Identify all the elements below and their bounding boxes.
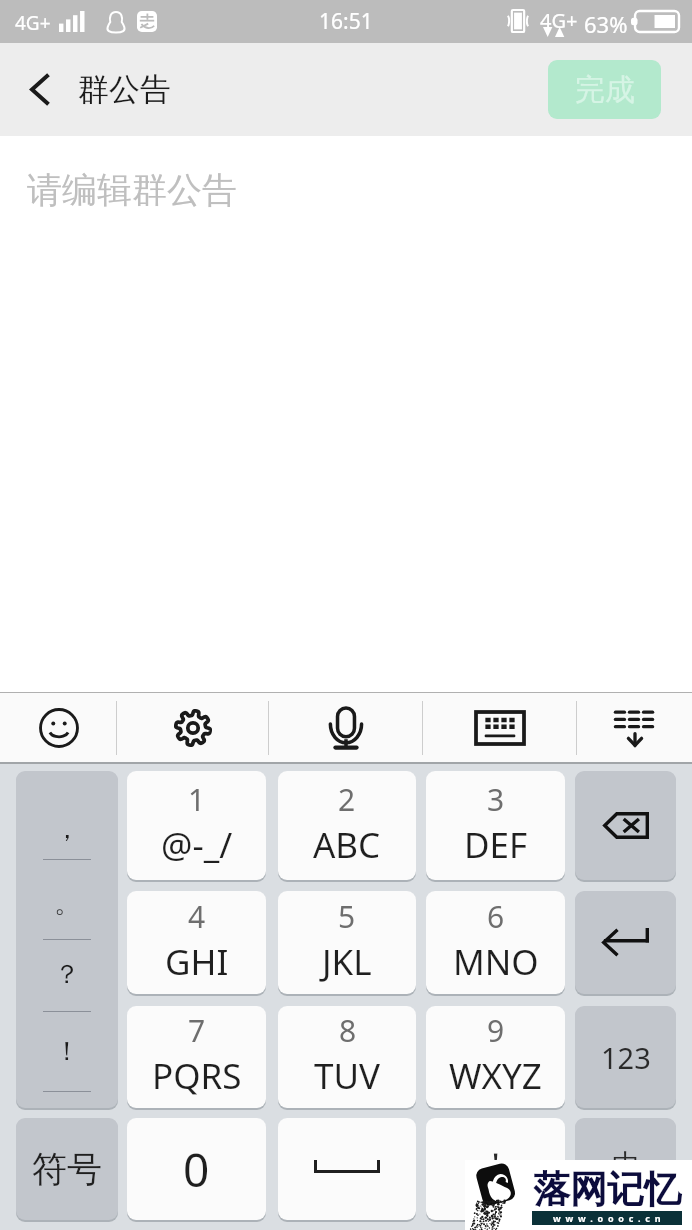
staticText: ！: [54, 1035, 80, 1068]
staticText: ABC: [313, 821, 381, 869]
staticText: 9: [487, 1010, 505, 1051]
staticText: WXYZ: [449, 1052, 542, 1100]
staticText: 符号: [32, 1147, 102, 1191]
staticText: 0: [183, 1138, 210, 1201]
button[interactable]: 6: [426, 891, 565, 994]
button[interactable]: 符号: [16, 1118, 118, 1220]
button[interactable]: 3: [426, 771, 565, 880]
button[interactable]: 9: [426, 1006, 565, 1108]
button[interactable]: Settings: [117, 693, 269, 762]
staticText: 完成: [575, 71, 635, 109]
staticText: 4: [188, 896, 206, 937]
staticText: 16:51: [319, 7, 373, 36]
button[interactable]: 5: [278, 891, 416, 994]
button[interactable]: 7: [127, 1006, 266, 1108]
staticText: 1: [188, 779, 206, 820]
button[interactable]: [575, 771, 676, 880]
staticText: 4G+: [15, 10, 51, 36]
staticText: ？: [54, 958, 80, 991]
button[interactable]: Hide keyboard: [577, 693, 692, 762]
staticText: 3: [487, 779, 505, 820]
staticText: PQRS: [152, 1052, 242, 1100]
staticText: 6: [487, 896, 505, 937]
staticText: 4G+: [540, 7, 578, 34]
staticText: w w w . o o o c . c n: [553, 1212, 662, 1224]
button[interactable]: Back: [8, 43, 70, 136]
staticText: 落网记忆: [533, 1166, 681, 1213]
staticText: MNO: [453, 938, 539, 986]
staticText: 63%: [584, 9, 628, 39]
button[interactable]: 123: [575, 1006, 676, 1108]
button[interactable]: [278, 1118, 416, 1220]
staticText: 中: [612, 1147, 640, 1182]
staticText: 。: [54, 887, 80, 920]
staticText: 8: [339, 1010, 357, 1051]
staticText: DEF: [464, 821, 528, 869]
button[interactable]: Keyboard: [423, 693, 577, 762]
staticText: TUV: [314, 1052, 381, 1100]
staticText: @-_/: [161, 821, 233, 869]
button[interactable]: ！: [426, 1118, 565, 1220]
button[interactable]: ，: [16, 771, 118, 1108]
button[interactable]: 2: [278, 771, 416, 880]
staticText: ，: [54, 813, 80, 846]
staticText: 7: [188, 1010, 206, 1051]
button[interactable]: 中: [575, 1118, 676, 1220]
staticText: JKL: [322, 938, 372, 986]
button[interactable]: [575, 891, 676, 994]
button[interactable]: 1: [127, 771, 266, 880]
button[interactable]: 完成: [548, 60, 661, 119]
button[interactable]: 0: [127, 1118, 266, 1220]
button[interactable]: 8: [278, 1006, 416, 1108]
staticText: ！: [481, 1145, 511, 1183]
staticText: 2: [338, 779, 356, 820]
staticText: GHI: [165, 938, 229, 986]
staticText: 群公告: [78, 70, 171, 109]
button[interactable]: 4: [127, 891, 266, 994]
staticText: 123: [601, 1038, 651, 1077]
button[interactable]: Voice input: [269, 693, 423, 762]
staticText: 5: [338, 896, 356, 937]
button[interactable]: Emoji: [0, 693, 117, 762]
staticText: 请编辑群公告: [27, 168, 237, 212]
